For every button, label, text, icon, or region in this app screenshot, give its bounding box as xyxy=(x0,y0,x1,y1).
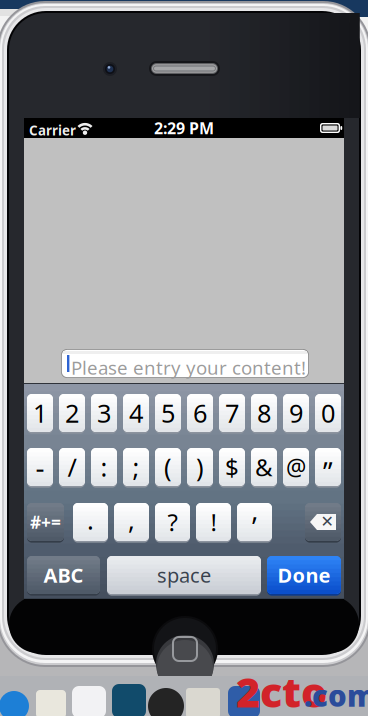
staticText: : xyxy=(100,450,107,484)
staticText: .com xyxy=(304,676,368,715)
button[interactable]: $ xyxy=(219,448,245,488)
staticText: & xyxy=(255,451,273,483)
staticText: 2:29 PM xyxy=(154,117,214,139)
staticText: ” xyxy=(323,454,333,490)
button[interactable]: ’ xyxy=(237,503,272,543)
staticText: ABC xyxy=(43,562,83,588)
staticText: 6 xyxy=(193,396,207,430)
button[interactable]: 0 xyxy=(315,394,341,434)
button[interactable]: 2 xyxy=(59,394,85,434)
button[interactable]: Delete xyxy=(305,503,341,543)
staticText: 9 xyxy=(289,396,303,430)
button[interactable]: ) xyxy=(187,448,213,488)
staticText: ; xyxy=(132,450,139,484)
button[interactable]: 1 xyxy=(27,394,53,434)
staticText: ? xyxy=(167,506,177,538)
staticText: 1 xyxy=(33,396,47,430)
staticText: , xyxy=(128,503,135,537)
staticText: ( xyxy=(164,450,172,484)
staticText: 0 xyxy=(321,396,335,430)
staticText: 7 xyxy=(225,396,239,430)
staticText: @ xyxy=(286,452,306,482)
button[interactable]: , xyxy=(114,503,149,543)
staticText: / xyxy=(67,450,76,484)
staticText: 3 xyxy=(97,396,111,430)
staticText: ’ xyxy=(252,509,257,545)
button[interactable]: ! xyxy=(196,503,231,543)
button[interactable]: 3 xyxy=(91,394,117,434)
button[interactable]: & xyxy=(251,448,277,488)
button[interactable]: ABC xyxy=(27,556,100,596)
staticText: 4 xyxy=(129,396,143,430)
staticText: 1. M xyxy=(1,22,28,40)
staticText: Done xyxy=(277,562,330,588)
staticText: Carrier xyxy=(29,121,76,139)
staticText: . xyxy=(87,503,94,537)
staticText: 2 xyxy=(65,396,79,430)
button[interactable]: 5 xyxy=(155,394,181,434)
button[interactable]: 8 xyxy=(251,394,277,434)
staticText: 8 xyxy=(257,396,271,430)
staticText: 2cto xyxy=(236,664,327,716)
button[interactable]: ” xyxy=(315,448,341,488)
button[interactable]: / xyxy=(59,448,85,488)
button[interactable]: ( xyxy=(155,448,181,488)
button[interactable]: 7 xyxy=(219,394,245,434)
button[interactable]: Done xyxy=(267,556,341,596)
button[interactable]: space xyxy=(107,556,261,596)
staticText: 5 xyxy=(161,396,175,430)
button[interactable]: 6 xyxy=(187,394,213,434)
button[interactable]: ; xyxy=(123,448,149,488)
button[interactable]: 9 xyxy=(283,394,309,434)
button[interactable]: . xyxy=(73,503,108,543)
button[interactable]: : xyxy=(91,448,117,488)
button[interactable]: ? xyxy=(155,503,190,543)
staticText: ! xyxy=(210,506,216,538)
button[interactable]: - xyxy=(27,448,53,488)
button[interactable]: 4 xyxy=(123,394,149,434)
staticText: #+= xyxy=(30,510,61,533)
staticText: space xyxy=(157,562,211,588)
staticText: ✕ xyxy=(320,512,333,531)
button[interactable]: #+= xyxy=(27,503,64,543)
staticText: Please entry your content! xyxy=(71,355,306,380)
staticText: - xyxy=(35,448,44,486)
staticText: $ xyxy=(225,451,239,483)
button[interactable]: @ xyxy=(283,448,309,488)
staticText: ) xyxy=(196,450,204,484)
